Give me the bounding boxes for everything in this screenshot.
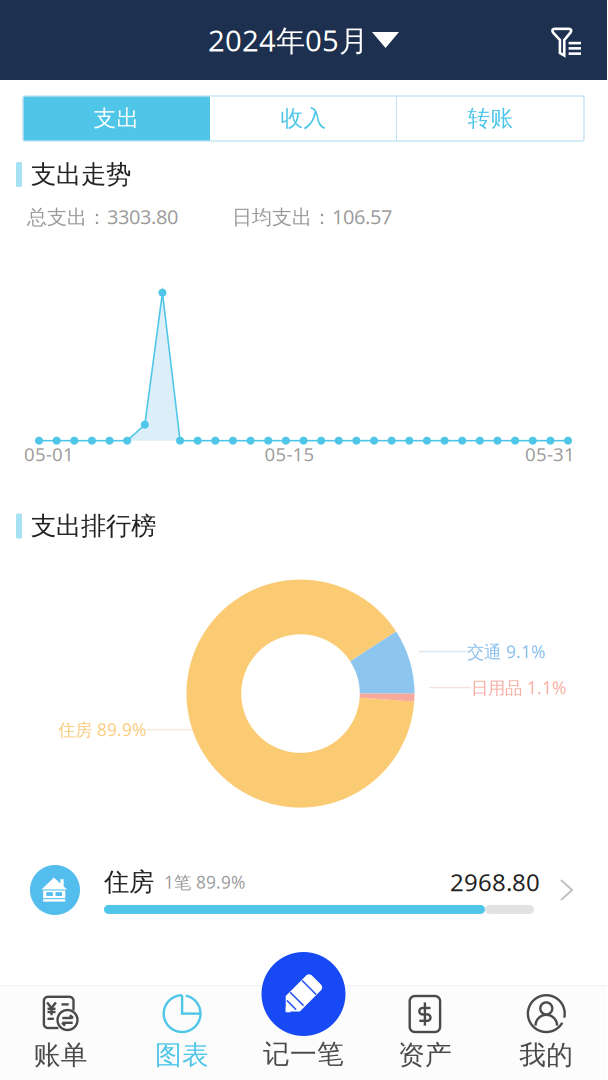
staticText: 住房 bbox=[104, 866, 154, 897]
staticText: 资产 bbox=[398, 1039, 452, 1071]
staticText: 1笔 89.9% bbox=[154, 870, 245, 893]
button[interactable]: 收入 bbox=[210, 96, 397, 141]
staticText: 2024年05月 bbox=[208, 20, 368, 59]
button[interactable]: 转账 bbox=[397, 96, 584, 141]
staticText: 账单 bbox=[34, 1039, 88, 1071]
button[interactable]: 支出 bbox=[23, 96, 210, 141]
staticText: 支出 bbox=[93, 105, 139, 132]
button[interactable]: Filter bbox=[550, 24, 607, 55]
staticText: 支出排行榜 bbox=[31, 510, 156, 542]
staticText: 05-31 bbox=[525, 442, 575, 466]
button[interactable]: 我的 bbox=[486, 994, 607, 1071]
button[interactable]: 资产 bbox=[364, 994, 486, 1071]
staticText: 05-01 bbox=[24, 442, 74, 466]
staticText: 交通 9.1% bbox=[467, 640, 545, 663]
staticText: 日用品 1.1% bbox=[471, 676, 566, 699]
staticText: 2968.80 bbox=[450, 866, 540, 898]
staticText: 总支出：3303.80 bbox=[27, 203, 178, 230]
button[interactable]: 2024年05月 bbox=[208, 20, 399, 59]
button[interactable]: 住房 bbox=[0, 855, 607, 925]
staticText: 收入 bbox=[280, 105, 326, 132]
button[interactable]: 账单 bbox=[0, 994, 121, 1071]
staticText: 我的 bbox=[519, 1039, 573, 1071]
staticText: 图表 bbox=[155, 1039, 209, 1071]
staticText: 日均支出：106.57 bbox=[232, 203, 392, 230]
staticText: 记一笔 bbox=[263, 1038, 344, 1070]
staticText: 住房 89.9% bbox=[58, 718, 146, 741]
button[interactable]: 图表 bbox=[121, 994, 243, 1071]
staticText: 转账 bbox=[467, 105, 513, 132]
button[interactable]: 记一笔 bbox=[261, 952, 345, 1036]
staticText: 支出走势 bbox=[31, 159, 131, 190]
staticText: 05-15 bbox=[264, 442, 314, 466]
